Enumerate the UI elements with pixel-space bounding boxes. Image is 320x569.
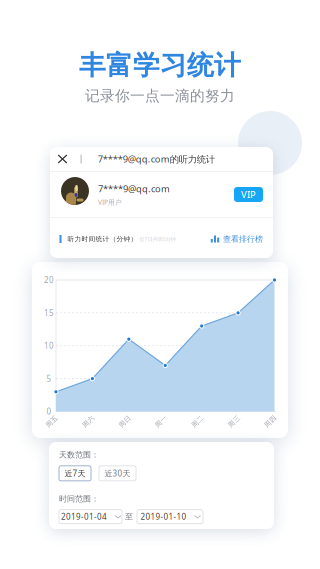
staticText: 周六: [81, 417, 95, 426]
staticText: 听力时间统计（分钟）: [67, 235, 137, 243]
staticText: 周五: [45, 417, 59, 426]
button[interactable]: 查看排行榜: [211, 234, 263, 244]
button[interactable]: 2019-01-04: [59, 510, 122, 524]
staticText: 周一: [154, 417, 168, 426]
staticText: 15: [44, 308, 54, 318]
staticText: 周四: [263, 417, 277, 426]
staticText: 至: [125, 512, 133, 521]
staticText: 丰富学习统计: [79, 49, 241, 82]
staticText: 查看排行榜: [223, 234, 263, 244]
button[interactable]: 2019-01-10: [137, 510, 203, 524]
staticText: 周二: [191, 417, 205, 426]
staticText: 时间范围：: [59, 494, 99, 504]
staticText: 10: [44, 340, 54, 351]
staticText: 近7日共听0分钟: [139, 235, 175, 243]
button[interactable]: VIP: [234, 187, 263, 202]
staticText: 7****9@qq.com的听力统计: [98, 153, 215, 165]
staticText: 20: [44, 275, 54, 285]
staticText: VIP用户: [98, 198, 122, 207]
staticText: 5: [46, 373, 51, 384]
staticText: 2019-01-10: [140, 511, 186, 522]
staticText: 7****9@qq.com: [98, 182, 170, 195]
staticText: VIP: [241, 188, 256, 201]
staticText: 2019-01-04: [61, 511, 107, 522]
staticText: 近7天: [64, 468, 85, 479]
button[interactable]: 关闭: [54, 151, 70, 167]
button[interactable]: 近7天: [59, 466, 91, 481]
staticText: 周日: [118, 417, 132, 426]
button[interactable]: 近30天: [99, 466, 136, 481]
staticText: 0: [46, 406, 51, 417]
staticText: 天数范围：: [59, 450, 99, 460]
staticText: 记录你一点一滴的努力: [85, 87, 235, 105]
staticText: 周三: [227, 417, 241, 426]
staticText: 近30天: [104, 468, 130, 479]
